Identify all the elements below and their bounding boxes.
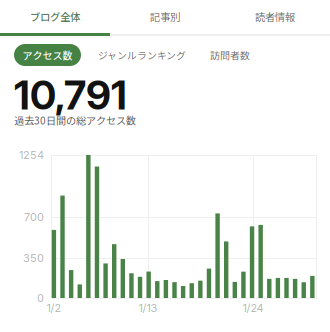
staticText: 1/24 <box>242 301 263 315</box>
staticText: 350 <box>23 251 44 265</box>
staticText: ジャンルランキング <box>98 48 186 62</box>
button[interactable]: アクセス数 <box>14 44 81 66</box>
button[interactable]: ブログ全体 <box>0 0 110 33</box>
staticText: 1254 <box>19 148 44 162</box>
staticText: 10,791 <box>14 71 127 119</box>
button[interactable]: ジャンルランキング <box>98 44 186 66</box>
staticText: 記事別 <box>150 9 180 24</box>
staticText: 訪問者数 <box>210 48 250 62</box>
staticText: アクセス数 <box>22 48 72 62</box>
staticText: 0 <box>37 291 44 305</box>
staticText: 700 <box>24 210 44 224</box>
button[interactable]: 記事別 <box>110 0 220 33</box>
staticText: ブログ全体 <box>30 9 80 24</box>
staticText: 読者情報 <box>255 9 295 24</box>
button[interactable]: 訪問者数 <box>210 44 250 66</box>
staticText: 過去30日間の総アクセス数 <box>14 113 136 127</box>
staticText: 1/13 <box>138 301 157 315</box>
staticText: 1/2 <box>46 301 61 315</box>
button[interactable]: 読者情報 <box>220 0 330 33</box>
